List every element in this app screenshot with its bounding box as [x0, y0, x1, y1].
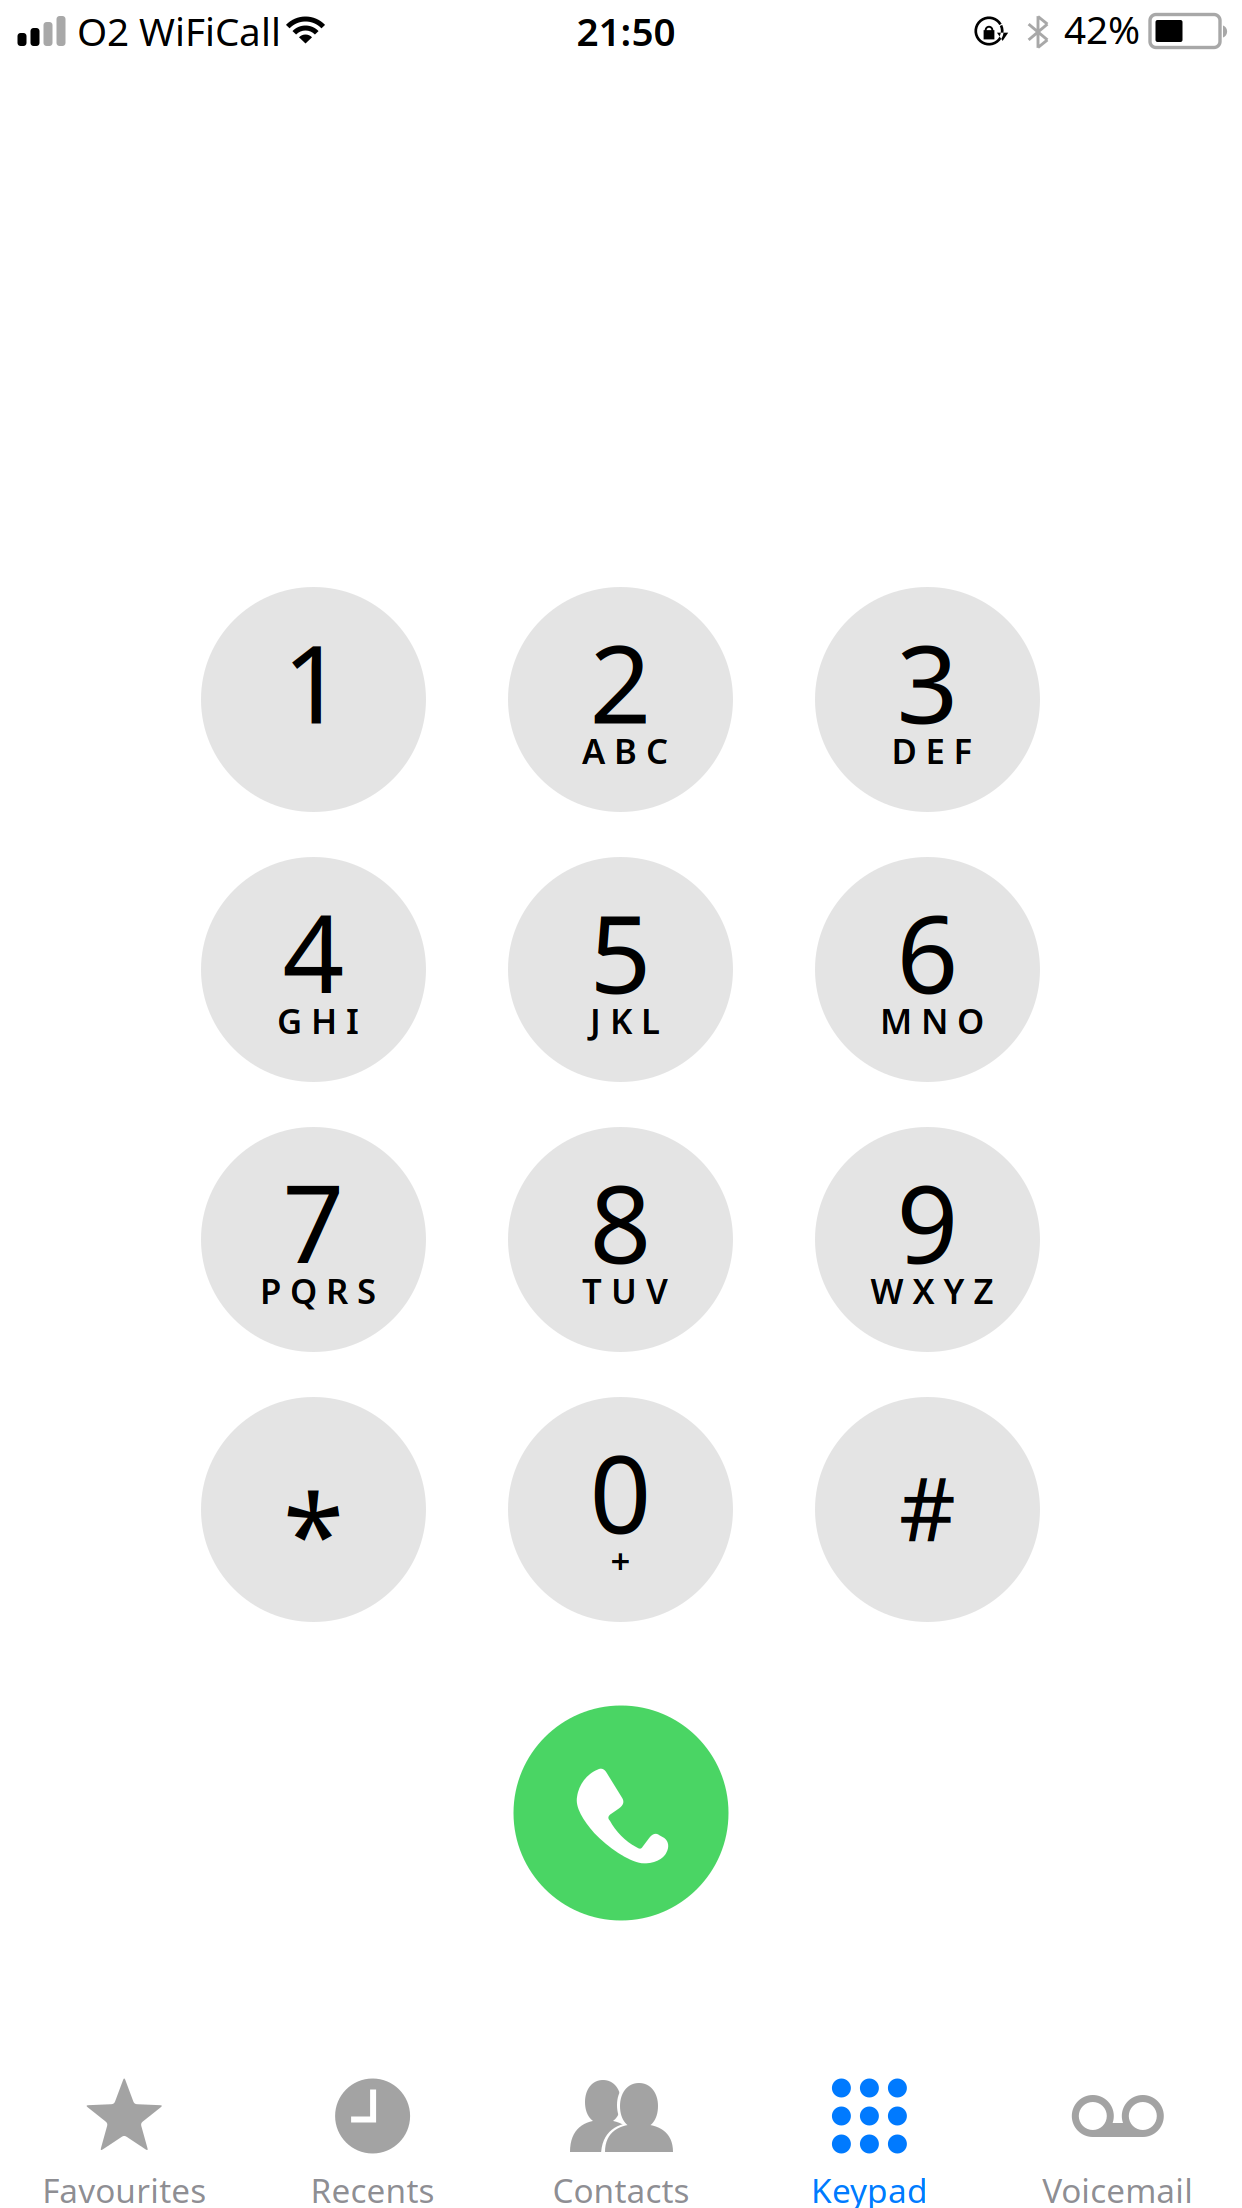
staticText: 6 [896, 880, 958, 1023]
staticText: 42% [1064, 3, 1140, 55]
button[interactable]: 3 [815, 587, 1040, 812]
staticText: + [610, 1537, 630, 1583]
staticText: 21:50 [576, 5, 675, 57]
button[interactable]: 1 [201, 587, 426, 812]
staticText: JKL [590, 997, 660, 1043]
button[interactable]: 0 [508, 1397, 733, 1622]
button[interactable]: Keypad [745, 2040, 994, 2208]
button[interactable]: 8 [508, 1127, 733, 1352]
button[interactable]: 7 [201, 1127, 426, 1352]
staticText: 7 [282, 1150, 344, 1293]
staticText: ABC [582, 727, 668, 773]
staticText: MNO [880, 997, 984, 1043]
button[interactable]: Favourites [0, 2040, 248, 2208]
button[interactable]: 4 [201, 857, 426, 1082]
button[interactable]: 9 [815, 1127, 1040, 1352]
staticText: 9 [896, 1150, 958, 1293]
button[interactable]: Voicemail [994, 2040, 1242, 2208]
staticText: # [899, 1448, 956, 1565]
button[interactable]: * [201, 1397, 426, 1622]
button[interactable]: # [815, 1397, 1040, 1622]
staticText: GHI [277, 997, 359, 1043]
staticText: 4 [282, 880, 344, 1023]
staticText: DEF [891, 727, 972, 773]
button[interactable]: Call [513, 1705, 728, 1920]
staticText: 0 [589, 1420, 651, 1563]
staticText: 2 [589, 610, 651, 753]
staticText: 1 [282, 610, 344, 753]
button[interactable]: Recents [248, 2040, 497, 2208]
staticText: WXYZ [870, 1267, 993, 1313]
button[interactable]: 5 [508, 857, 733, 1082]
staticText: PQRS [260, 1267, 376, 1313]
button[interactable]: 2 [508, 587, 733, 812]
staticText: 5 [589, 880, 651, 1023]
staticText: Keypad [811, 2168, 928, 2208]
staticText: Contacts [552, 2168, 689, 2208]
staticText: Favourites [42, 2168, 206, 2208]
staticText: Recents [311, 2168, 435, 2208]
button[interactable]: 6 [815, 857, 1040, 1082]
staticText: TUV [582, 1267, 668, 1313]
staticText: * [283, 1459, 344, 1606]
staticText: Voicemail [1042, 2168, 1193, 2208]
button[interactable]: Contacts [497, 2040, 745, 2208]
staticText: 8 [589, 1150, 651, 1293]
staticText: 3 [896, 610, 958, 753]
staticText: O2 WiFiCall [77, 5, 281, 57]
